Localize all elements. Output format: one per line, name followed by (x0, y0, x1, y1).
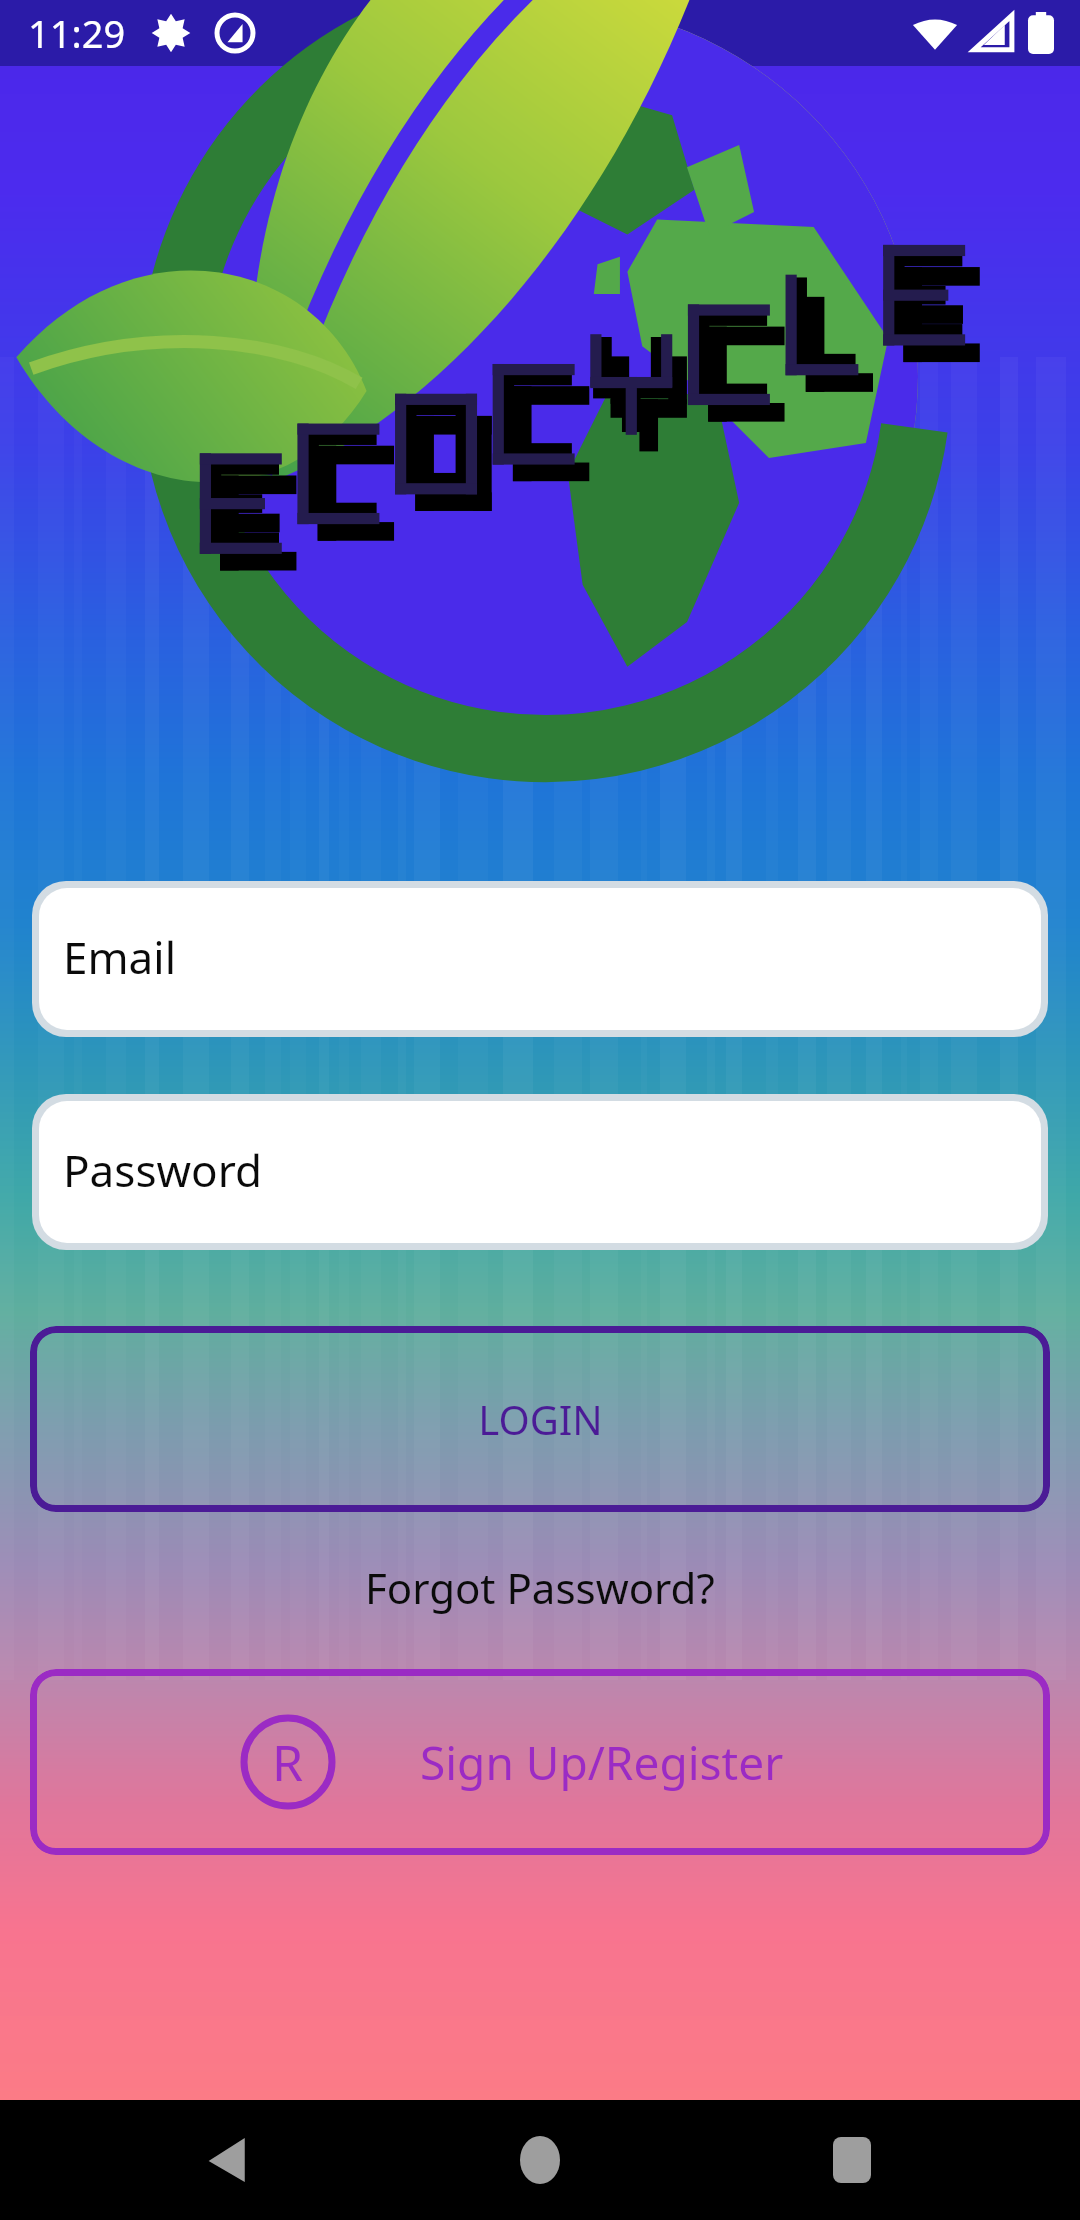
button[interactable]: Register (30, 1669, 1050, 1855)
staticText: R (272, 1728, 304, 1796)
staticText: Forgot Password? (365, 1559, 715, 1616)
staticText: LOGIN (478, 1392, 603, 1446)
button[interactable]: Forgot Password? (0, 1542, 1080, 1632)
button[interactable]: LOGIN (30, 1326, 1050, 1512)
button[interactable]: Recent apps (802, 2110, 902, 2210)
staticText: Password (63, 1140, 263, 1200)
button[interactable]: Back (178, 2110, 278, 2210)
staticText: 11:29 (28, 7, 126, 59)
button[interactable]: Password (39, 1101, 1041, 1243)
staticText: Email (63, 927, 176, 987)
staticText: Sign Up/Register (420, 1731, 784, 1794)
button[interactable]: Home (490, 2110, 590, 2210)
other: Register (240, 1714, 336, 1810)
button[interactable]: Email (39, 888, 1041, 1030)
